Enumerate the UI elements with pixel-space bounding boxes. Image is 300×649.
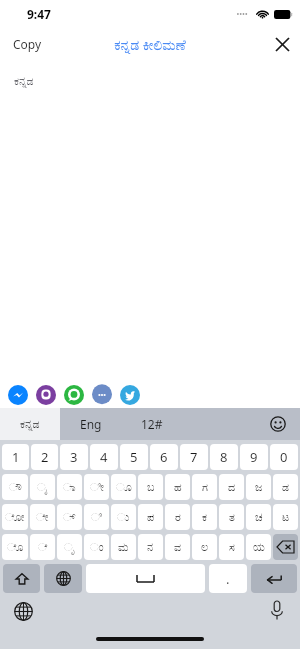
staticText: ಹ [174,482,182,493]
staticText: ಬ [147,482,155,493]
button[interactable]: ಡ [273,474,298,500]
button[interactable]: ವ [165,534,190,560]
staticText: 12# [141,416,163,432]
staticText: 7 [190,448,198,466]
button[interactable]: Shift [3,564,40,593]
button[interactable]: ಕನ್ನಡ [0,408,60,440]
button[interactable]: ದ [219,474,244,500]
button[interactable]: ೀ [84,474,109,500]
button[interactable]: ು [111,504,136,530]
button[interactable]: Viber [36,385,56,405]
staticText: ೀ [90,482,104,493]
button[interactable]: ಟ [273,504,298,530]
button[interactable]: ಯ [246,534,271,560]
button[interactable]: ಪ [138,504,163,530]
staticText: ವ [174,542,182,553]
staticText: 0 [280,448,288,466]
button[interactable]: Close [265,31,300,58]
button[interactable]: ನ [138,534,163,560]
staticText: ೋ [5,512,25,523]
button[interactable]: ಂ [84,534,109,560]
button[interactable]: ಚ [246,504,271,530]
button[interactable]: 3 [60,444,88,470]
staticText: ೊ [7,542,24,553]
button[interactable]: ಹ [165,474,190,500]
staticText: ದ [228,482,236,493]
button[interactable]: 12# [122,408,182,440]
button[interactable]: Voice input [270,601,284,622]
button[interactable]: 9 [240,444,268,470]
button[interactable]: ಸ [219,534,244,560]
button[interactable]: Return [251,564,297,593]
staticText: ಯ [253,542,265,553]
button[interactable]: Messenger [8,385,28,405]
button[interactable]: ಗ [192,474,217,500]
staticText: ಗ [202,482,208,493]
staticText: ನ [147,542,154,553]
staticText: Eng [80,416,102,432]
button[interactable]: Eng [60,408,122,440]
staticText: ು [117,512,130,523]
staticText: ಪ [147,512,155,523]
staticText: ್ [63,512,76,523]
button[interactable]: ೂ [111,474,136,500]
staticText: 9:47 [27,6,51,22]
button[interactable]: ಮ [111,534,136,560]
button[interactable]: 7 [180,444,208,470]
button[interactable]: ಲ [192,534,217,560]
button[interactable]: Emoji [256,408,300,440]
staticText: 5 [130,448,138,466]
button[interactable]: ಕ [192,504,217,530]
button[interactable]: ಾ [57,474,82,500]
button[interactable]: ೋ [2,504,28,530]
button[interactable]: ೇ [30,504,55,530]
button[interactable]: ಜ [246,474,271,500]
staticText: ಟ [282,512,290,523]
staticText: 6 [160,448,168,466]
button[interactable]: 4 [90,444,118,470]
button[interactable]: ೆ [30,534,55,560]
staticText: 3 [70,448,78,466]
button[interactable]: Twitter [120,385,140,405]
button[interactable]: 5 [120,444,148,470]
button[interactable]: Space [86,564,205,593]
button[interactable]: Change language [44,564,82,593]
button[interactable]: ತ [219,504,244,530]
button[interactable]: Backspace [273,534,298,560]
staticText: 2 [41,448,49,466]
button[interactable]: ಬ [138,474,163,500]
button[interactable]: ರ [165,504,190,530]
button[interactable]: 8 [210,444,238,470]
staticText: ಕನ್ನಡ ಕೀಲಿಮಣೆ [114,35,186,54]
button[interactable]: Messages [92,385,112,405]
staticText: 4 [100,448,108,466]
button[interactable]: 1 [2,444,29,470]
button[interactable]: Copy [0,30,55,58]
staticText: ಂ [90,542,104,553]
button[interactable]: ೖ [30,474,55,500]
button[interactable]: ್ [57,504,82,530]
staticText: . [226,570,230,588]
button[interactable]: 0 [270,444,298,470]
staticText: ೃ [64,542,75,553]
button[interactable]: 6 [150,444,178,470]
button[interactable]: . [209,564,247,593]
staticText: ಕನ್ನಡ [14,76,34,87]
staticText: 1 [12,448,20,466]
button[interactable]: Change keyboard [14,602,33,621]
button[interactable]: WhatsApp [64,385,84,405]
staticText: ಡ [282,482,290,493]
staticText: ೆ [38,542,48,553]
staticText: 9 [250,448,258,466]
button[interactable]: ೃ [57,534,82,560]
button[interactable]: ೊ [2,534,28,560]
button[interactable]: ಿ [84,504,109,530]
staticText: ಚ [255,512,263,523]
staticText: Copy [13,36,42,52]
staticText: ಿ [91,512,102,523]
staticText: ಕನ್ನಡ [20,419,40,430]
staticText: ೖ [37,482,48,493]
button[interactable]: ೌ [2,474,28,500]
button[interactable]: 2 [31,444,58,470]
staticText: ರ [175,512,181,523]
